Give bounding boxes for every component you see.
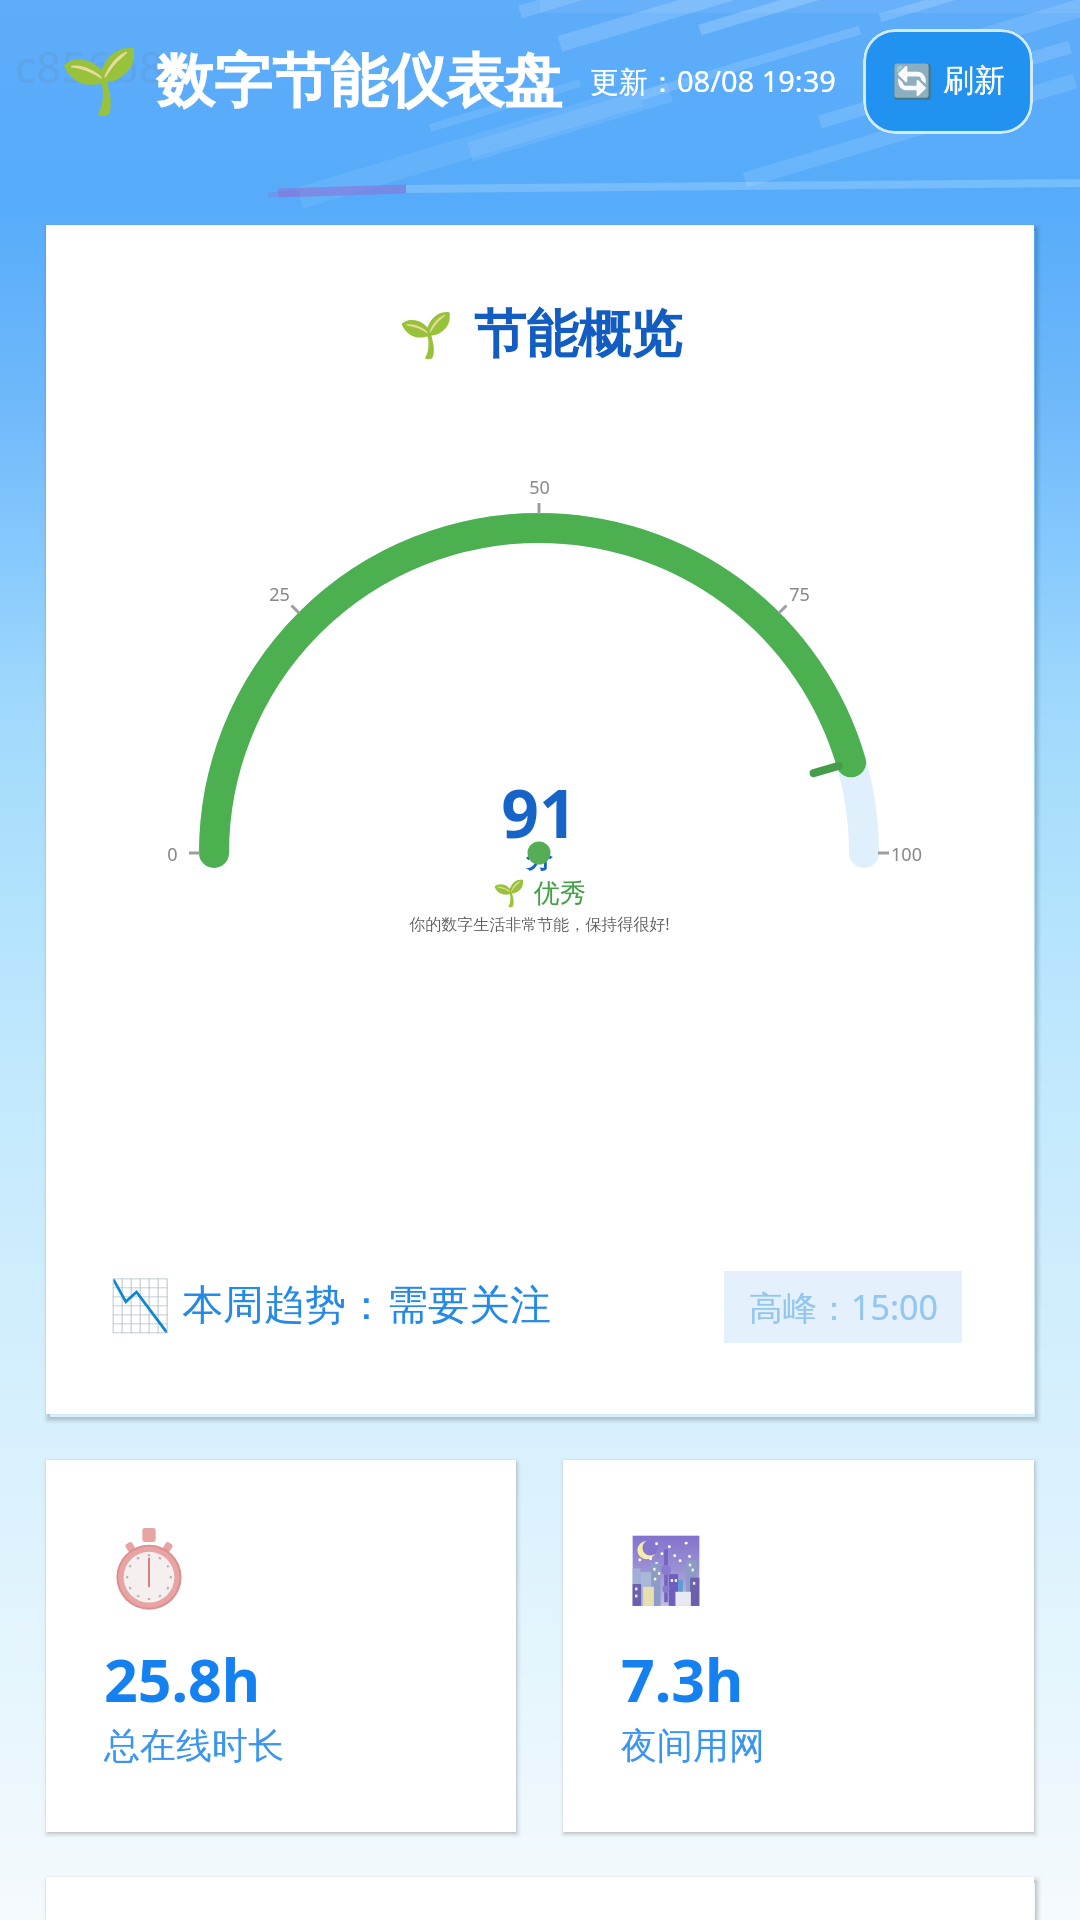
staticText: 总在线时长 bbox=[104, 1723, 284, 1768]
staticText: 你的数字生活非常节能，保持得很好! bbox=[409, 913, 670, 935]
other: Stopwatch bbox=[114, 1528, 184, 1610]
staticText: 夜间用网 bbox=[621, 1723, 765, 1768]
staticText: 75 bbox=[789, 582, 810, 607]
staticText: 高峰：15:00 bbox=[749, 1284, 938, 1330]
staticText: 📉 bbox=[109, 1277, 172, 1336]
button[interactable]: 刷新 Refresh bbox=[863, 29, 1033, 134]
staticText: 更新：08/08 19:39 bbox=[590, 61, 836, 101]
staticText: 本周趋势：需要关注 bbox=[182, 1280, 551, 1332]
staticText: 节能概览 bbox=[474, 302, 682, 368]
staticText: 91 bbox=[501, 767, 577, 847]
staticText: 分 bbox=[526, 843, 552, 876]
staticText: 7.3h bbox=[621, 1639, 744, 1719]
staticText: 🌱 bbox=[60, 44, 140, 119]
button[interactable]: Stopwatch bbox=[46, 1460, 516, 1832]
staticText: 刷新 bbox=[943, 61, 1005, 100]
staticText: 🔄 bbox=[892, 62, 934, 101]
staticText: 优秀 bbox=[534, 877, 586, 910]
button[interactable]: 📉 bbox=[109, 1266, 551, 1346]
staticText: 100 bbox=[891, 842, 922, 867]
staticText: 25.8h bbox=[104, 1639, 261, 1719]
staticText: 0 bbox=[167, 842, 178, 867]
button[interactable]: Night city bbox=[563, 1460, 1034, 1832]
staticText: 25 bbox=[269, 582, 290, 607]
staticText: 🌱 bbox=[399, 309, 454, 361]
other: Night city bbox=[631, 1528, 701, 1610]
staticText: 🌱 bbox=[493, 878, 526, 908]
staticText: 数字节能仪表盘 bbox=[156, 45, 562, 118]
staticText: c856b8 bbox=[15, 36, 164, 96]
staticText: 50 bbox=[529, 475, 550, 500]
